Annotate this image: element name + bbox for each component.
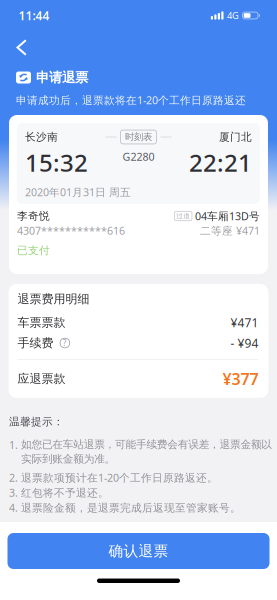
staticText: 李奇悦 — [17, 209, 50, 222]
button[interactable]: 确认退票 — [7, 533, 269, 569]
staticText: 已支付 — [17, 244, 50, 257]
staticText: 2. 退票款项预计在1-20个工作日原路返还。 — [9, 470, 218, 485]
staticText: - ¥94 — [230, 335, 258, 351]
staticText: 申请成功后，退票款将在1-20个工作日原路返还 — [16, 93, 246, 107]
staticText: ? — [63, 338, 67, 348]
staticText: 手续费 — [18, 336, 54, 350]
staticText: 1. — [9, 438, 21, 452]
staticText: 厦门北 — [219, 130, 252, 143]
staticText: 2020年01月31日 周五 — [25, 185, 131, 199]
staticText: 4G — [227, 9, 239, 22]
staticText: 04车厢13D号 — [192, 209, 260, 223]
staticText: 退票费用明细 — [18, 292, 90, 306]
staticText: 22:21 — [189, 147, 252, 178]
staticText: 过道 — [176, 212, 190, 220]
staticText: 4307***********616 — [17, 223, 125, 238]
staticText: 应退票款 — [18, 371, 66, 386]
staticText: 15:32 — [25, 147, 88, 178]
staticText: G2280 — [122, 149, 154, 164]
staticText: 二等座 ¥471 — [200, 223, 260, 238]
staticText: 4. 退票险金额，是退票完成后返现至管家账号。 — [9, 500, 241, 515]
staticText: 长沙南 — [25, 130, 58, 143]
staticText: 车票票款 — [18, 315, 66, 330]
staticText: 时刻表 — [125, 131, 152, 143]
button[interactable]: 返回 — [10, 36, 33, 59]
staticText: 确认退票 — [108, 542, 168, 560]
staticText: 如您已在车站退票，可能手续费会有误差，退票金额以实际到账金额为准。 — [21, 438, 272, 465]
staticText: 申请退票 — [36, 69, 88, 86]
staticText: 温馨提示： — [9, 415, 64, 428]
staticText: 11:44 — [18, 7, 49, 23]
button[interactable]: 时刻表 — [105, 130, 171, 144]
staticText: ¥377 — [222, 368, 258, 389]
staticText: 3. 红包将不予退还。 — [9, 485, 109, 500]
staticText: ¥471 — [230, 314, 258, 330]
button[interactable]: 手续费说明 — [60, 338, 70, 348]
